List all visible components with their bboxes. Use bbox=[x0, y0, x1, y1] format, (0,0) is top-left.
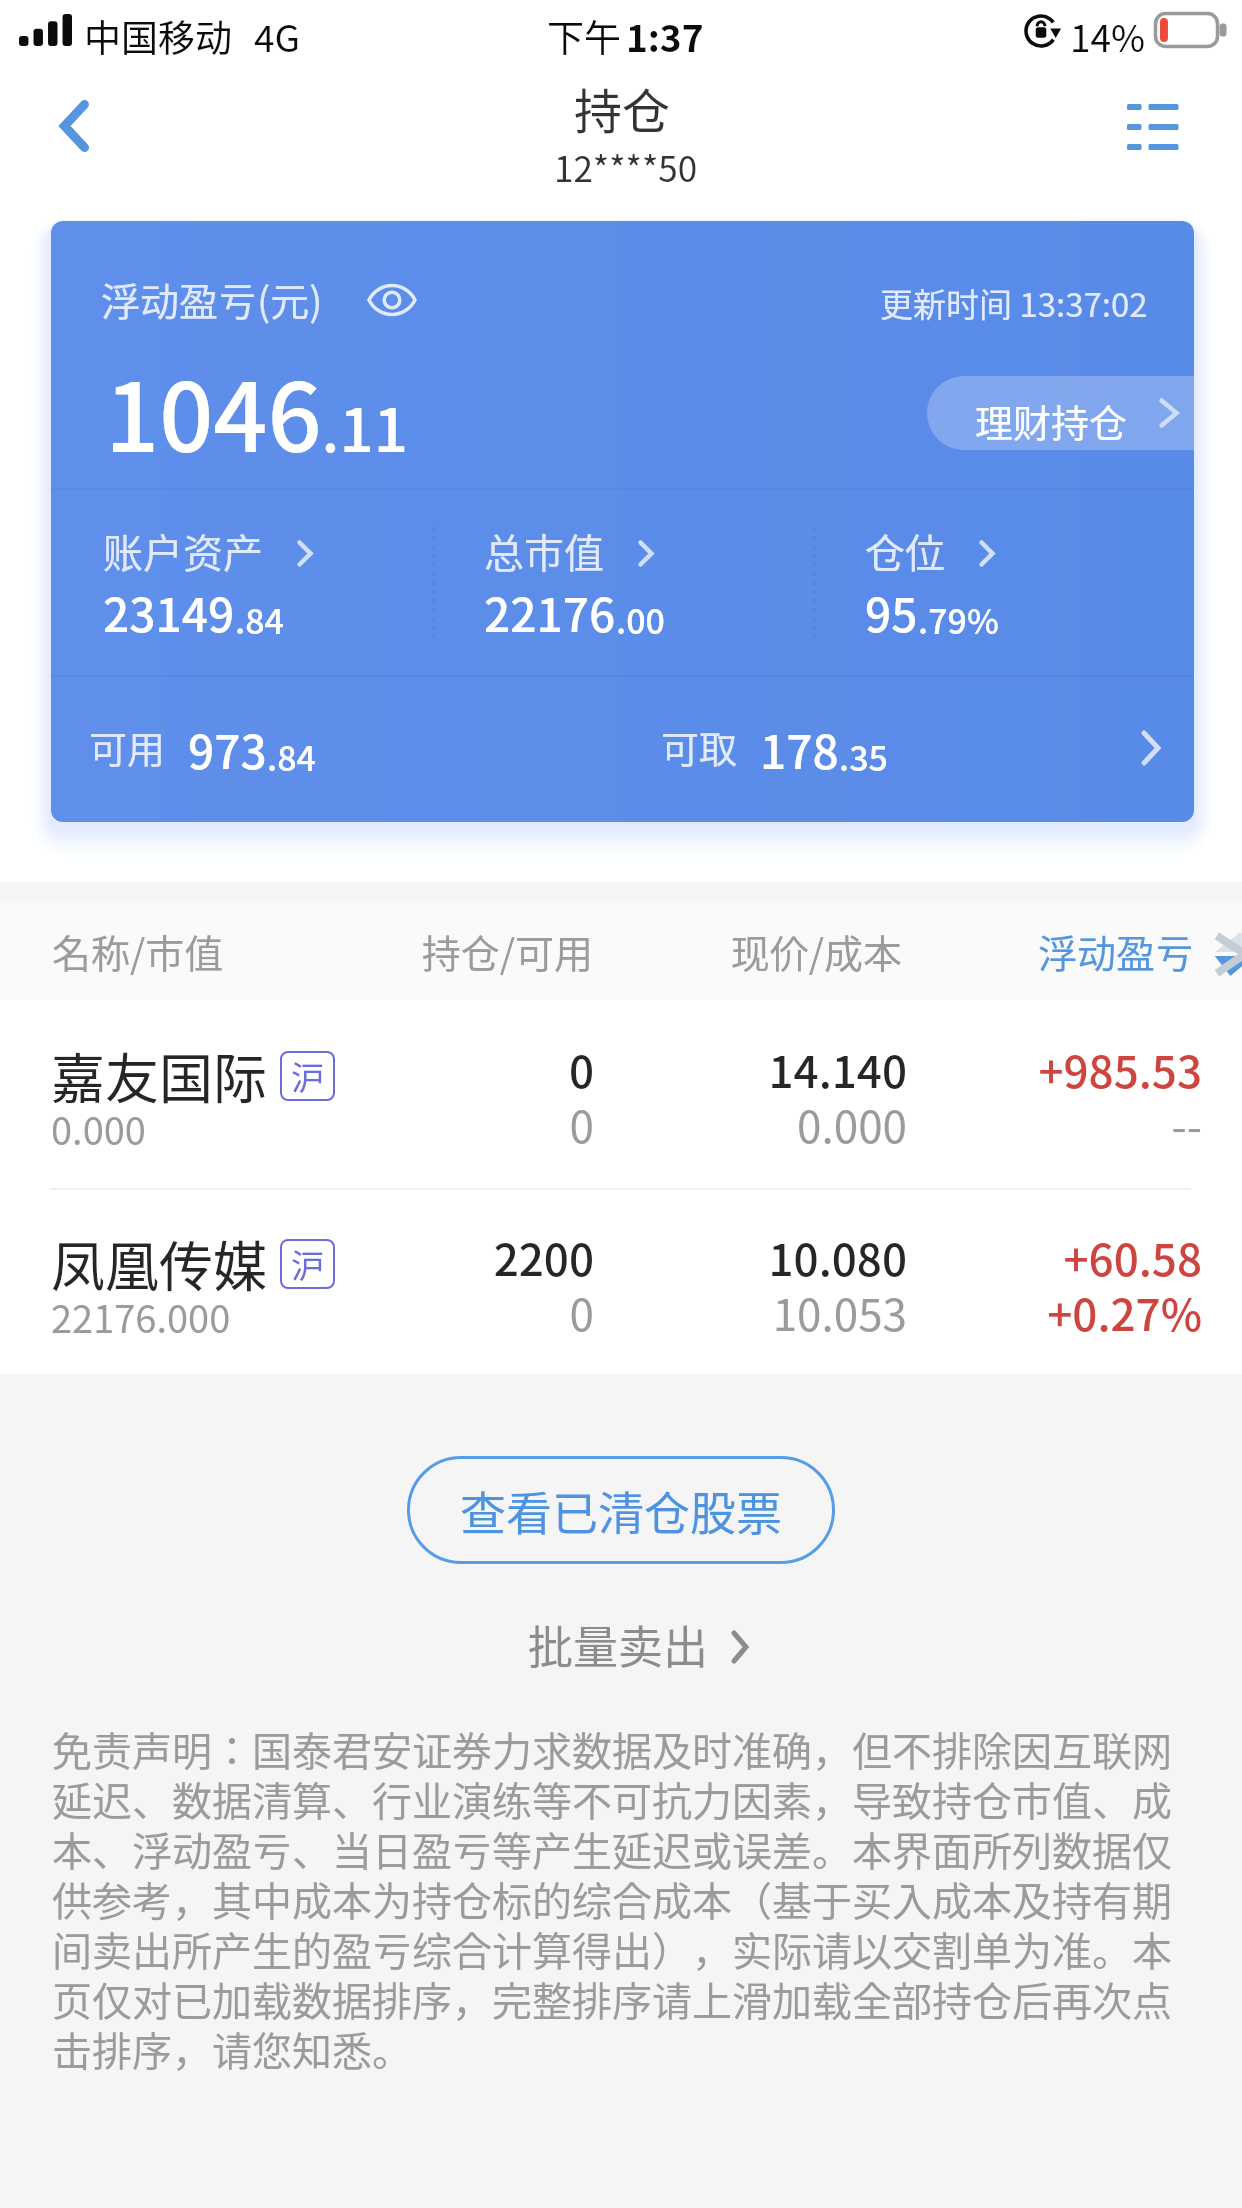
staticText: 免责声明：国泰君安证券力求数据及时准确，但不排除因互联网延迟、数据清算、行业演练… bbox=[52, 1720, 1192, 2078]
staticText: .35 bbox=[839, 732, 888, 781]
staticText: 4G bbox=[254, 9, 301, 63]
staticText: 可用 bbox=[89, 719, 166, 774]
staticText: 22176 bbox=[484, 579, 616, 646]
staticText: 14.140 bbox=[670, 1037, 907, 1101]
staticText: 总市值 bbox=[484, 522, 604, 580]
staticText: -- bbox=[960, 1092, 1202, 1156]
staticText: 0 bbox=[360, 1037, 594, 1101]
staticText: 凤凰传媒 bbox=[51, 1224, 267, 1302]
staticText: 可取 bbox=[661, 719, 738, 774]
button[interactable]: 总市值 bbox=[484, 489, 814, 675]
staticText: 1:37 bbox=[626, 9, 704, 63]
staticText: 嘉友国际 bbox=[51, 1036, 267, 1114]
staticText: 0.000 bbox=[51, 1101, 146, 1156]
staticText: 10.053 bbox=[670, 1280, 907, 1344]
staticText: .84 bbox=[267, 732, 316, 781]
staticText: 中国移动 bbox=[84, 9, 232, 63]
staticText: 沪 bbox=[291, 1240, 324, 1288]
staticText: 95 bbox=[865, 579, 918, 646]
staticText: 0.000 bbox=[670, 1092, 907, 1156]
staticText: 查看已清仓股票 bbox=[460, 1477, 782, 1544]
staticText: .79% bbox=[918, 595, 999, 644]
staticText: 理财持仓 bbox=[975, 393, 1128, 448]
staticText: 持仓 bbox=[574, 73, 671, 143]
staticText: 持仓/可用 bbox=[389, 923, 593, 979]
staticText: 现价/成本 bbox=[700, 923, 902, 979]
staticText: 下午 bbox=[547, 9, 621, 63]
staticText: 2200 bbox=[360, 1225, 594, 1289]
button[interactable]: Back bbox=[10, 75, 120, 195]
staticText: 批量卖出 bbox=[528, 1612, 709, 1672]
staticText: 更新时间 13:37:02 bbox=[880, 279, 1148, 327]
staticText: 仓位 bbox=[865, 522, 945, 580]
button[interactable]: 仓位 bbox=[865, 489, 1194, 675]
button[interactable]: 账户资产 bbox=[103, 489, 433, 675]
staticText: 账户资产 bbox=[103, 522, 263, 580]
staticText: 浮动盈亏 bbox=[1038, 923, 1195, 979]
button[interactable]: Sort list bbox=[1092, 75, 1202, 185]
staticText: 178 bbox=[760, 716, 839, 783]
button[interactable]: 可用 bbox=[51, 676, 1194, 822]
staticText: 973 bbox=[188, 716, 267, 783]
staticText: 浮动盈亏(元) bbox=[101, 271, 323, 327]
staticText: 12****50 bbox=[554, 141, 698, 192]
staticText: 10.080 bbox=[670, 1225, 907, 1289]
staticText: 0 bbox=[360, 1092, 594, 1156]
button[interactable]: 浮动盈亏(元) bbox=[51, 221, 1194, 488]
staticText: 名称/市值 bbox=[52, 923, 224, 979]
staticText: .84 bbox=[235, 595, 284, 644]
staticText: 0 bbox=[360, 1280, 594, 1344]
staticText: 23149 bbox=[103, 579, 235, 646]
button[interactable]: 理财持仓 bbox=[927, 376, 1194, 450]
staticText: +0.27% bbox=[960, 1280, 1202, 1344]
button[interactable]: Toggle amount visibility bbox=[364, 277, 420, 323]
staticText: .00 bbox=[616, 595, 665, 644]
button[interactable]: 查看已清仓股票 bbox=[407, 1456, 835, 1564]
button[interactable]: 批量卖出 bbox=[528, 1612, 751, 1672]
staticText: 22176.000 bbox=[51, 1289, 231, 1344]
staticText: +60.58 bbox=[960, 1225, 1202, 1289]
staticText: 1046.11 bbox=[105, 342, 408, 480]
staticText: +985.53 bbox=[960, 1037, 1202, 1101]
staticText: 14% bbox=[1070, 9, 1146, 63]
button[interactable]: 凤凰传媒 bbox=[0, 1188, 1242, 1374]
button[interactable]: 嘉友国际 bbox=[0, 1000, 1242, 1186]
staticText: 沪 bbox=[291, 1052, 324, 1100]
button[interactable]: 浮动盈亏 bbox=[950, 907, 1242, 995]
